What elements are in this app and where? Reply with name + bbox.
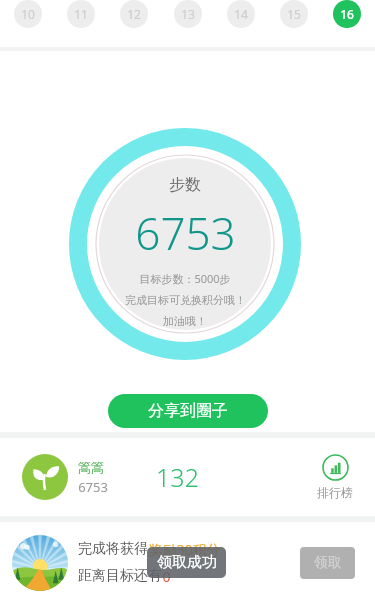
staticText: 领取成功 (157, 553, 217, 572)
staticText: 16 (340, 6, 354, 22)
button[interactable]: 13 (174, 0, 202, 28)
staticText: 分享到圈子 (148, 401, 228, 421)
button[interactable]: 15 (280, 0, 308, 28)
staticText: 11 (74, 6, 88, 22)
button[interactable]: 分享到圈子 (108, 394, 268, 428)
button[interactable]: 领取 (300, 547, 355, 579)
button[interactable]: 排行榜 (307, 454, 363, 500)
staticText: 排行榜 (317, 485, 353, 500)
staticText: 132 (156, 460, 199, 494)
button[interactable]: 篙篙 (22, 454, 108, 500)
staticText: 14 (234, 6, 248, 22)
button[interactable]: 16 (333, 0, 361, 28)
staticText: 步数 (169, 175, 201, 195)
staticText: 篙篙 (78, 459, 104, 475)
staticText: 13 (181, 6, 195, 22)
staticText: 领取 (314, 554, 342, 572)
button[interactable]: 10 (14, 0, 42, 28)
staticText: 6753 (135, 203, 236, 263)
button[interactable]: 14 (227, 0, 255, 28)
staticText: 目标步数：5000步 (139, 271, 231, 286)
staticText: 奖励30积分 (148, 540, 221, 559)
staticText: 距离目标还有 (78, 567, 162, 585)
staticText: 15 (287, 6, 301, 22)
staticText: 6753 (78, 478, 108, 496)
other: 排行榜 (322, 454, 349, 481)
staticText: 完成目标可兑换积分哦！ (125, 293, 246, 307)
staticText: 12 (127, 6, 141, 22)
staticText: 加油哦！ (163, 314, 207, 328)
button[interactable]: 12 (120, 0, 148, 28)
staticText: 10 (21, 6, 35, 22)
staticText: 0 (162, 567, 171, 586)
button[interactable]: 11 (67, 0, 95, 28)
staticText: 完成将获得 (78, 540, 148, 558)
